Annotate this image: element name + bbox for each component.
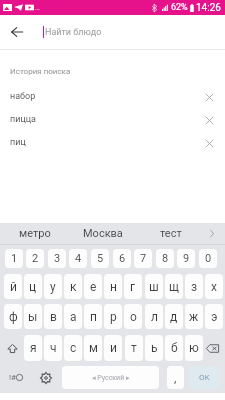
staticText: 2 [32, 252, 39, 265]
button[interactable]: Remove набор [200, 88, 218, 106]
staticText: к [70, 280, 77, 294]
staticText: у [50, 280, 56, 294]
staticText: 7 [140, 252, 147, 265]
button[interactable]: ь [145, 335, 163, 361]
staticText: э [211, 310, 218, 324]
button[interactable]: ы [24, 304, 42, 329]
button[interactable]: набор [0, 85, 225, 108]
button[interactable]: д [165, 304, 183, 329]
button[interactable]: ч [44, 335, 62, 361]
button[interactable]: , [167, 366, 184, 389]
button[interactable]: х [205, 274, 223, 299]
button[interactable]: Backspace [202, 335, 223, 361]
button[interactable]: 9 [177, 249, 195, 268]
button[interactable]: Back [0, 15, 34, 49]
staticText: м [89, 341, 98, 355]
staticText: тест [160, 227, 182, 240]
button[interactable]: тест [137, 223, 205, 244]
staticText: с [70, 341, 77, 355]
button[interactable]: щ [165, 274, 183, 299]
button[interactable]: 0 [199, 249, 217, 268]
staticText: щ [169, 280, 179, 294]
button[interactable]: й [4, 274, 22, 299]
button[interactable]: Remove пиц [200, 134, 218, 152]
button[interactable]: 8 [156, 249, 174, 268]
staticText: ц [29, 280, 37, 294]
button[interactable]: 5 [91, 249, 109, 268]
button[interactable]: г [124, 274, 142, 299]
staticText: а [70, 310, 77, 324]
staticText: метро [19, 227, 51, 240]
button[interactable]: о [124, 304, 142, 329]
staticText: ... [35, 4, 40, 11]
staticText: набор [10, 91, 36, 102]
button[interactable]: б [165, 335, 183, 361]
staticText: н [110, 280, 117, 294]
staticText: х [211, 280, 217, 294]
button[interactable]: 7 [134, 249, 152, 268]
staticText: ◂ Русский ▸ [92, 374, 130, 382]
button[interactable]: 3 [48, 249, 66, 268]
button[interactable]: с [64, 335, 82, 361]
button[interactable]: OK [189, 366, 220, 389]
button[interactable]: Remove пицца [200, 111, 218, 129]
button[interactable]: к [64, 274, 82, 299]
button[interactable]: 6 [113, 249, 131, 268]
button[interactable]: и [104, 335, 122, 361]
button[interactable]: е [84, 274, 102, 299]
button[interactable]: 1 [5, 249, 23, 268]
staticText: р [110, 310, 117, 324]
staticText: Найти блюдо [45, 27, 102, 38]
staticText: ы [28, 310, 38, 324]
button[interactable]: ш [145, 274, 163, 299]
button[interactable]: я [24, 335, 42, 361]
button[interactable]: ◂ Русский ▸ [62, 366, 159, 389]
staticText: 5 [97, 252, 104, 265]
staticText: OK [199, 373, 210, 382]
button[interactable]: р [104, 304, 122, 329]
button[interactable]: ц [24, 274, 42, 299]
button[interactable]: а [64, 304, 82, 329]
staticText: б [171, 341, 178, 355]
button[interactable]: т [125, 335, 143, 361]
staticText: о [130, 310, 137, 324]
button[interactable]: Shift [2, 335, 23, 361]
button[interactable]: м [84, 335, 102, 361]
button[interactable]: э [205, 304, 223, 329]
staticText: в [50, 310, 57, 324]
staticText: , [174, 371, 177, 385]
staticText: !# [9, 373, 16, 382]
staticText: 4 [75, 252, 82, 265]
button[interactable]: ю [185, 335, 203, 361]
button[interactable]: пиц [0, 131, 225, 154]
staticText: ю [189, 341, 199, 355]
staticText: я [30, 341, 37, 355]
staticText: 62% [171, 2, 188, 13]
button[interactable]: Symbols [4, 366, 28, 389]
button[interactable]: н [104, 274, 122, 299]
button[interactable]: в [44, 304, 62, 329]
button[interactable]: з [185, 274, 203, 299]
staticText: 3 [54, 252, 61, 265]
button[interactable]: More suggestions [205, 223, 225, 244]
staticText: Москва [83, 227, 123, 240]
staticText: 14:26 [196, 2, 221, 14]
button[interactable]: 4 [69, 249, 87, 268]
button[interactable]: л [145, 304, 163, 329]
button[interactable]: метро [0, 223, 69, 244]
button[interactable]: п [84, 304, 102, 329]
staticText: пицца [10, 114, 36, 125]
button[interactable]: ж [185, 304, 203, 329]
button[interactable]: Settings [34, 366, 58, 389]
staticText: 6 [119, 252, 126, 265]
button[interactable]: Москва [69, 223, 137, 244]
staticText: 8 [162, 252, 169, 265]
staticText: г [130, 280, 136, 294]
staticText: 1 [11, 252, 18, 265]
button[interactable]: 2 [26, 249, 44, 268]
staticText: История поиска [10, 67, 71, 76]
button[interactable]: у [44, 274, 62, 299]
button[interactable]: пицца [0, 108, 225, 131]
button[interactable]: ф [4, 304, 22, 329]
staticText: й [10, 280, 17, 294]
